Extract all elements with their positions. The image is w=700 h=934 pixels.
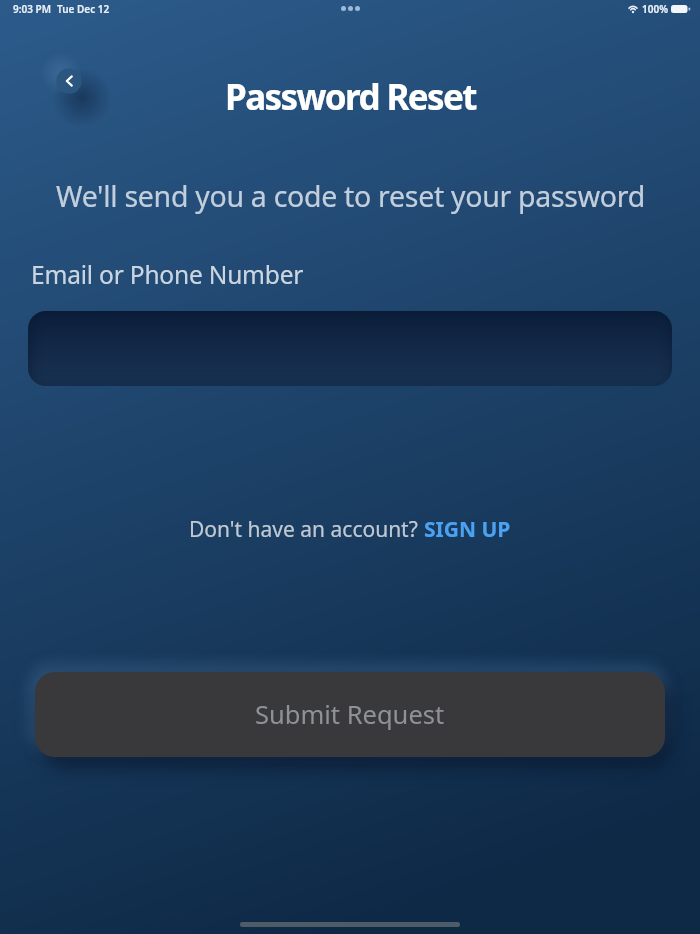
staticText: 9:03 PM [13,2,51,16]
staticText: Email or Phone Number [31,258,304,291]
staticText: Tue Dec 12 [57,2,110,16]
staticText: 100% [642,2,668,16]
button[interactable]: Submit Request [35,672,665,757]
staticText: Password Reset [225,73,476,121]
staticText: Submit Request [255,697,445,732]
staticText: Don't have an account? [189,515,424,544]
button[interactable] [44,56,94,106]
staticText: We'll send you a code to reset your pass… [56,177,645,216]
button[interactable]: SIGN UP [424,515,511,544]
button[interactable] [28,311,672,386]
